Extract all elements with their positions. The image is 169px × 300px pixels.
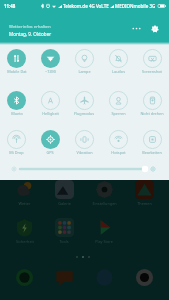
button[interactable]: Settings: [148, 22, 161, 35]
button[interactable]: Vibration: [67, 130, 101, 155]
staticText: Mobile Dat: [7, 69, 27, 74]
staticText: Bearbeiten: [142, 150, 162, 155]
staticText: MEDIONmobile 3G: [115, 3, 156, 9]
button[interactable]: Wetter: [5, 180, 44, 206]
staticText: Mi Drop: [9, 150, 24, 155]
staticText: Sicherheit: [16, 239, 34, 244]
staticText: Nicht drehen: [140, 111, 164, 116]
button[interactable]: Einstellungen: [84, 180, 124, 206]
staticText: Hotspot: [111, 150, 126, 155]
button[interactable]: Helligkeit: [33, 91, 67, 116]
staticText: Galerie: [58, 201, 71, 206]
button[interactable]: ~7490: [33, 49, 67, 74]
staticText: Lampe: [78, 69, 91, 74]
button[interactable]: Brightness: [0, 162, 169, 176]
button[interactable]: Phone: [5, 268, 44, 287]
button[interactable]: Galerie: [44, 180, 84, 206]
staticText: GPS: [46, 150, 54, 155]
staticText: Einstellungen: [92, 201, 117, 206]
staticText: Wetter: [18, 201, 31, 206]
staticText: Helligkeit: [42, 111, 59, 116]
button[interactable]: Screenshot: [135, 49, 169, 74]
button[interactable]: Bearbeiten: [135, 130, 169, 155]
button[interactable]: Messages: [44, 268, 84, 287]
staticText: Wetterinfos erhalten: [9, 23, 51, 29]
button[interactable]: GPS: [33, 130, 67, 155]
staticText: 11:48: [4, 3, 16, 9]
button[interactable]: Browser: [84, 268, 124, 287]
staticText: Flugmodus: [74, 111, 94, 116]
button[interactable]: Sicherheit: [5, 218, 44, 244]
button[interactable]: Mobile Dat: [0, 49, 33, 74]
staticText: Blueto: [11, 111, 23, 116]
staticText: Lautlos: [112, 69, 125, 74]
button[interactable]: Themen: [124, 180, 164, 206]
button[interactable]: Lampe: [67, 49, 101, 74]
button[interactable]: Sperren: [101, 91, 135, 116]
button[interactable]: Tools: [44, 218, 84, 244]
staticText: Vibration: [76, 150, 93, 155]
button[interactable]: Mi Drop: [0, 130, 33, 155]
staticText: Montag, 9. Oktober: [9, 31, 52, 37]
staticText: Tools: [59, 239, 69, 244]
button[interactable]: Hotspot: [101, 130, 135, 155]
button[interactable]: Blueto: [0, 91, 33, 116]
staticText: Themen: [137, 201, 152, 206]
button[interactable]: More options: [130, 22, 143, 35]
staticText: ~7490: [45, 69, 56, 74]
button[interactable]: Nicht drehen: [135, 91, 169, 116]
button[interactable]: Camera: [124, 268, 164, 287]
staticText: Screenshot: [142, 69, 162, 74]
staticText: Sperren: [111, 111, 126, 116]
button[interactable]: Lautlos: [101, 49, 135, 74]
button[interactable]: Flugmodus: [67, 91, 101, 116]
button[interactable]: Play Store: [84, 218, 124, 244]
staticText: Telekom.de 4G VoLTE: [63, 3, 109, 9]
staticText: Play Store: [95, 239, 113, 244]
